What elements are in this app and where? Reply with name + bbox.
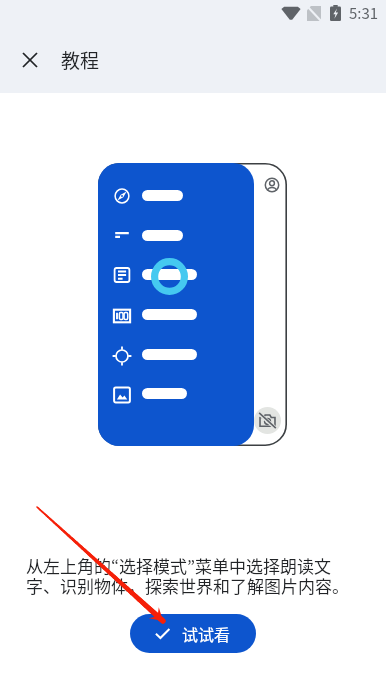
button[interactable]: Camera off [254, 407, 281, 434]
button[interactable]: 试试看 [130, 614, 256, 653]
staticText: 5:31 [349, 2, 379, 24]
staticText: 试试看 [182, 622, 231, 645]
button[interactable]: Close [10, 40, 50, 80]
staticText: 从左上角的“选择模式”菜单中选择朗读文 字、识别物体，探索世界和了解图片内容。 [26, 553, 349, 598]
staticText: 教程 [61, 46, 100, 74]
